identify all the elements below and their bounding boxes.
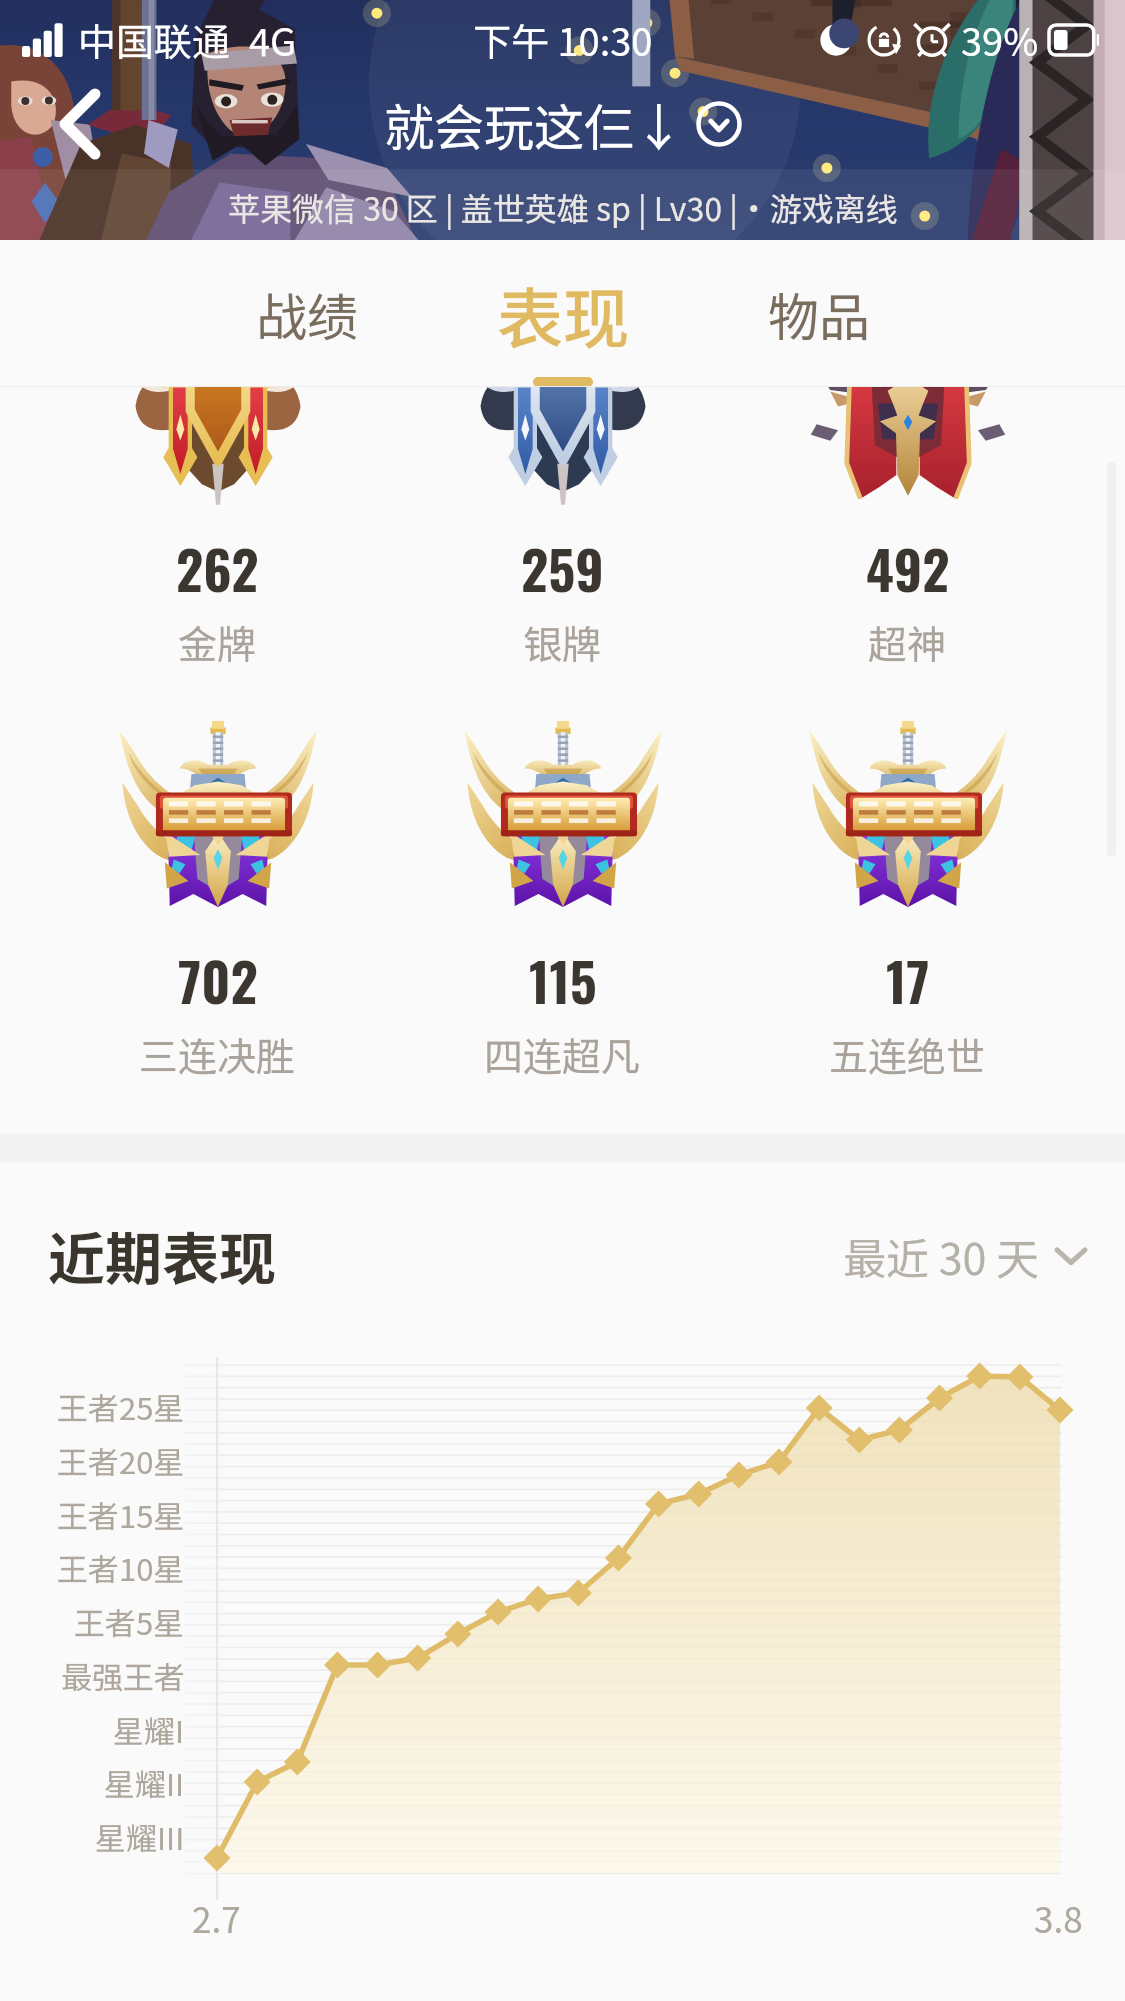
staticText: 王者5星 bbox=[74, 1599, 185, 1643]
staticText: 最近 30 天 bbox=[843, 1225, 1039, 1287]
staticText: 王者10星 bbox=[57, 1545, 185, 1589]
button[interactable]: 262 bbox=[45, 387, 390, 670]
staticText: 下午 10:30 bbox=[473, 12, 653, 67]
staticText: 物品 bbox=[768, 277, 871, 351]
staticText: 三连决胜 bbox=[139, 1026, 296, 1082]
button[interactable]: 17 bbox=[735, 739, 1080, 1082]
staticText: 115 bbox=[529, 941, 597, 1020]
staticText: 五连绝世 bbox=[829, 1026, 986, 1082]
button[interactable]: 战绩 bbox=[179, 240, 435, 387]
staticText: 2.7 bbox=[192, 1892, 241, 1943]
button[interactable]: 702 bbox=[45, 739, 390, 1082]
staticText: 3.8 bbox=[1034, 1892, 1083, 1943]
staticText: 262 bbox=[176, 529, 259, 608]
staticText: 银牌 bbox=[523, 614, 602, 670]
staticText: 金牌 bbox=[178, 614, 257, 670]
staticText: 王者15星 bbox=[57, 1492, 185, 1536]
staticText: 492 bbox=[866, 529, 950, 608]
button[interactable]: 115 bbox=[390, 739, 735, 1082]
button[interactable]: 表现 bbox=[435, 240, 691, 387]
button[interactable]: Back bbox=[48, 92, 112, 156]
staticText: 702 bbox=[178, 941, 258, 1020]
staticText: 四连超凡 bbox=[484, 1026, 641, 1082]
staticText: 星耀II bbox=[104, 1760, 185, 1804]
staticText: 王者25星 bbox=[57, 1384, 185, 1428]
staticText: 王者20星 bbox=[57, 1438, 185, 1482]
staticText: 4G bbox=[249, 12, 297, 67]
staticText: 星耀III bbox=[95, 1814, 185, 1858]
staticText: 39% bbox=[961, 12, 1039, 67]
staticText: 超神 bbox=[868, 614, 947, 670]
button[interactable]: 最近 30 天 bbox=[837, 1219, 1093, 1293]
staticText: 战绩 bbox=[256, 277, 359, 351]
button[interactable]: 492 bbox=[735, 387, 1080, 670]
button[interactable]: 259 bbox=[390, 387, 735, 670]
staticText: 就会玩这仨↓ bbox=[384, 88, 684, 160]
button[interactable]: 物品 bbox=[691, 240, 947, 387]
staticText: 中国联通 bbox=[78, 12, 231, 67]
staticText: 苹果微信 30 区 | 盖世英雄 sp | Lv30 |•游戏离线 bbox=[228, 184, 898, 230]
staticText: 最强王者 bbox=[61, 1653, 185, 1697]
button[interactable]: 就会玩这仨↓ bbox=[378, 88, 748, 160]
staticText: 表现 bbox=[497, 266, 629, 362]
staticText: 近期表现 bbox=[48, 1214, 276, 1297]
staticText: 259 bbox=[521, 529, 604, 608]
staticText: 星耀I bbox=[113, 1707, 185, 1751]
staticText: 17 bbox=[886, 941, 930, 1020]
